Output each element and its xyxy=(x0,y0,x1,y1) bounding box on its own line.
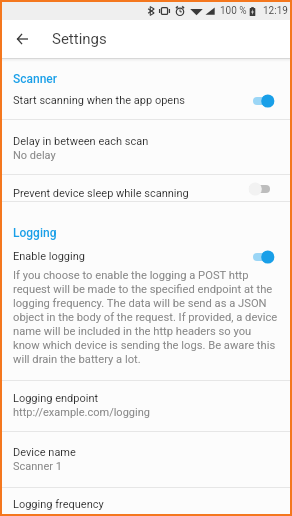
staticText: 12:19 xyxy=(263,5,288,17)
button[interactable]: Delay in between each scan xyxy=(2,120,290,174)
button[interactable]: Device name xyxy=(2,432,290,487)
button[interactable]: Logging frequency xyxy=(2,488,290,511)
button[interactable]: Enable logging xyxy=(2,250,290,269)
button[interactable]: Switch on xyxy=(253,250,277,264)
staticText: Prevent device sleep while scanning xyxy=(13,187,189,200)
staticText: If you choose to enable the logging a PO… xyxy=(13,269,279,366)
staticText: Device name xyxy=(13,446,76,459)
staticText: Start scanning when the app opens xyxy=(13,94,185,107)
button[interactable]: Back xyxy=(5,22,39,56)
button[interactable]: Start scanning when the app opens xyxy=(2,94,290,119)
staticText: Scanner 1 xyxy=(13,460,62,473)
staticText: 100 % xyxy=(220,5,247,17)
staticText: Enable logging xyxy=(13,250,85,263)
staticText: Logging frequency xyxy=(13,498,104,511)
staticText: No delay xyxy=(13,149,56,162)
staticText: http://example.com/logging xyxy=(13,406,150,419)
staticText: Scanner xyxy=(13,72,58,86)
button[interactable]: Switch off xyxy=(249,182,273,196)
button[interactable]: Switch on xyxy=(253,94,277,108)
staticText: Settings xyxy=(52,30,107,48)
button[interactable]: Logging endpoint xyxy=(2,381,290,431)
staticText: Logging xyxy=(13,226,57,240)
staticText: Delay in between each scan xyxy=(13,135,149,148)
staticText: Logging endpoint xyxy=(13,392,99,405)
button[interactable]: Prevent device sleep while scanning xyxy=(2,175,290,201)
